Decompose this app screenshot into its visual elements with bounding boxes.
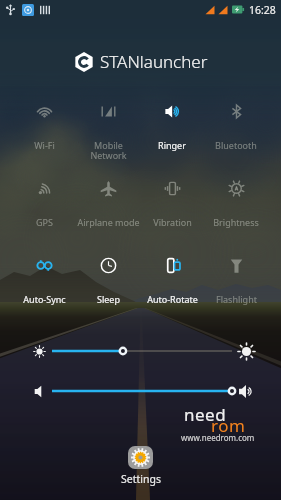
staticText: Sleep bbox=[97, 293, 120, 305]
button[interactable]: Settings bbox=[110, 446, 171, 486]
staticText: Bluetooth bbox=[215, 139, 257, 151]
button[interactable]: Auto-Rotate bbox=[140, 240, 204, 317]
button[interactable]: Sleep bbox=[76, 240, 140, 317]
staticText: Settings bbox=[121, 472, 161, 486]
staticText: Vibration bbox=[153, 216, 192, 228]
staticText: Flashlight bbox=[216, 293, 257, 305]
button[interactable]: Brightness bbox=[204, 163, 268, 240]
button[interactable]: Wi-Fi bbox=[13, 86, 76, 163]
staticText: GPS bbox=[36, 216, 53, 228]
button[interactable]: Volume slider bbox=[52, 381, 232, 401]
button[interactable]: STANlauncher bbox=[74, 50, 208, 73]
staticText: STANlauncher bbox=[100, 50, 208, 73]
button[interactable]: Vibration bbox=[140, 163, 204, 240]
button[interactable]: Mobile Network bbox=[76, 86, 140, 163]
staticText: rom bbox=[211, 414, 246, 437]
staticText: Airplane mode bbox=[77, 216, 140, 228]
button[interactable]: Flashlight bbox=[204, 240, 268, 317]
staticText: Auto-Sync bbox=[23, 293, 66, 305]
button[interactable]: Brightness slider bbox=[52, 341, 232, 361]
button[interactable]: GPS bbox=[13, 163, 76, 240]
button[interactable]: Bluetooth bbox=[204, 86, 268, 163]
staticText: Wi-Fi bbox=[34, 139, 55, 151]
staticText: 16:28 bbox=[249, 3, 276, 17]
button[interactable]: Airplane mode bbox=[76, 163, 140, 240]
button[interactable]: Auto-Sync bbox=[13, 240, 76, 317]
staticText: Mobile Network bbox=[90, 139, 127, 161]
staticText: Auto-Rotate bbox=[147, 293, 198, 305]
staticText: www.needrom.com bbox=[181, 432, 255, 443]
staticText: need bbox=[184, 403, 227, 426]
staticText: Ringer bbox=[158, 139, 186, 151]
staticText: Brightness bbox=[213, 216, 259, 228]
other: Volume bbox=[32, 384, 47, 399]
other: Brightness bbox=[33, 345, 46, 358]
button[interactable]: Ringer bbox=[140, 86, 204, 163]
